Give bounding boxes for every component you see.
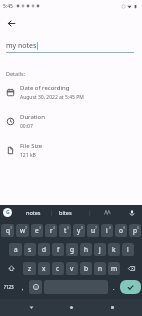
staticText: t bbox=[64, 226, 67, 235]
button[interactable]: h bbox=[80, 243, 92, 256]
staticText: v bbox=[70, 264, 74, 273]
staticText: Duration bbox=[20, 113, 45, 121]
staticText: 00:07 bbox=[20, 123, 33, 130]
staticText: z bbox=[28, 264, 32, 273]
staticText: n bbox=[98, 264, 103, 273]
button[interactable]: Google bbox=[0, 205, 15, 220]
button[interactable]: 5 bbox=[59, 224, 71, 237]
staticText: August 30, 2022 at 5:45 PM bbox=[20, 94, 84, 101]
button[interactable]: Duration bbox=[6, 113, 142, 130]
staticText: Date of recording bbox=[20, 84, 70, 92]
staticText: g bbox=[70, 245, 74, 254]
staticText: 7 bbox=[95, 225, 98, 230]
staticText: 5 bbox=[67, 225, 70, 230]
button[interactable]: Recents bbox=[102, 299, 122, 316]
staticText: h bbox=[84, 245, 89, 254]
staticText: Details: bbox=[6, 70, 26, 77]
staticText: 8 bbox=[109, 225, 112, 230]
button[interactable]: Date of recording bbox=[6, 84, 142, 101]
staticText: p bbox=[133, 226, 137, 235]
staticText: 121 kB bbox=[20, 152, 36, 159]
staticText: 6 bbox=[81, 225, 84, 230]
staticText: x bbox=[42, 264, 46, 273]
staticText: e bbox=[35, 226, 39, 235]
button[interactable]: 0 bbox=[129, 224, 141, 237]
button[interactable]: Back bbox=[4, 16, 18, 30]
staticText: bites bbox=[59, 209, 72, 216]
staticText: l bbox=[127, 245, 129, 254]
staticText: c bbox=[56, 264, 60, 273]
staticText: a bbox=[14, 245, 18, 254]
button[interactable]: Voice input bbox=[121, 205, 142, 220]
staticText: 9 bbox=[123, 225, 126, 230]
button[interactable]: d bbox=[38, 243, 50, 256]
button[interactable]: c bbox=[52, 262, 64, 275]
staticText: i bbox=[106, 226, 108, 235]
staticText: q bbox=[6, 226, 10, 235]
staticText: ?123 bbox=[4, 284, 14, 290]
staticText: y bbox=[77, 226, 81, 235]
staticText: 0 bbox=[137, 225, 140, 230]
staticText: 4 bbox=[53, 225, 56, 230]
button[interactable]: g bbox=[66, 243, 78, 256]
button[interactable]: Shift bbox=[1, 262, 21, 275]
button[interactable]: Back bbox=[21, 299, 41, 316]
button[interactable]: bites bbox=[52, 205, 89, 220]
staticText: 5:45 bbox=[3, 3, 13, 10]
button[interactable]: a bbox=[9, 243, 22, 256]
button[interactable]: 7 bbox=[87, 224, 99, 237]
staticText: b bbox=[84, 264, 88, 273]
staticText: File Size bbox=[20, 142, 43, 150]
button[interactable]: k bbox=[108, 243, 120, 256]
staticText: m bbox=[111, 264, 118, 273]
button[interactable]: s bbox=[24, 243, 36, 256]
button[interactable]: v bbox=[66, 262, 78, 275]
staticText: o bbox=[119, 226, 123, 235]
staticText: u bbox=[91, 226, 96, 235]
staticText: d bbox=[42, 245, 46, 254]
button[interactable]: f bbox=[52, 243, 64, 256]
staticText: r bbox=[50, 226, 53, 235]
button[interactable]: Handwriting bbox=[90, 205, 121, 220]
button[interactable]: Backspace bbox=[122, 262, 141, 275]
staticText: G bbox=[6, 209, 10, 216]
button[interactable]: Emoji bbox=[29, 280, 42, 294]
button[interactable]: 2 bbox=[16, 224, 29, 237]
button[interactable]: File Size bbox=[6, 142, 142, 159]
button[interactable]: Comma bbox=[17, 279, 28, 295]
staticText: , bbox=[22, 284, 24, 291]
staticText: s bbox=[28, 245, 32, 254]
button[interactable]: Enter bbox=[120, 280, 141, 294]
button[interactable]: 9 bbox=[115, 224, 127, 237]
staticText: 1 bbox=[10, 225, 13, 230]
button[interactable]: ?123 bbox=[1, 279, 16, 295]
button[interactable]: 3 bbox=[31, 224, 43, 237]
staticText: k bbox=[112, 245, 116, 254]
button[interactable]: b bbox=[80, 262, 92, 275]
button[interactable]: n bbox=[94, 262, 106, 275]
button[interactable]: 4 bbox=[45, 224, 57, 237]
button[interactable]: 8 bbox=[101, 224, 113, 237]
staticText: my notes bbox=[6, 41, 37, 51]
button[interactable]: l bbox=[122, 243, 134, 256]
staticText: 2 bbox=[25, 225, 28, 230]
button[interactable]: 1 bbox=[1, 224, 14, 237]
button[interactable]: notes bbox=[15, 205, 51, 220]
button[interactable]: Home bbox=[61, 299, 81, 316]
staticText: f bbox=[57, 245, 60, 254]
button[interactable]: Period bbox=[109, 279, 119, 295]
button[interactable]: x bbox=[38, 262, 50, 275]
button[interactable]: 6 bbox=[73, 224, 85, 237]
staticText: w bbox=[20, 226, 26, 235]
button[interactable]: m bbox=[108, 262, 120, 275]
staticText: notes bbox=[26, 209, 41, 216]
button[interactable]: z bbox=[23, 262, 36, 275]
staticText: 3 bbox=[39, 225, 42, 230]
staticText: j bbox=[99, 245, 101, 254]
button[interactable]: j bbox=[94, 243, 106, 256]
staticText: . bbox=[113, 284, 115, 291]
